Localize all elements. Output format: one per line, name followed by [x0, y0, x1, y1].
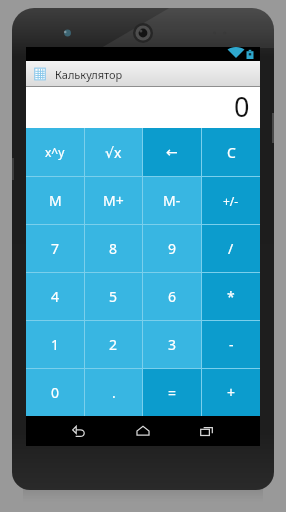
staticText: √x — [105, 143, 122, 162]
staticText: M+ — [103, 191, 124, 210]
staticText: 1 — [51, 335, 60, 354]
staticText: 7 — [51, 239, 60, 258]
staticText: 0 — [51, 383, 60, 402]
button[interactable]: 6 — [143, 273, 201, 320]
button[interactable]: 0 — [26, 369, 84, 416]
button[interactable]: 1 — [26, 321, 84, 368]
button[interactable]: 3 — [143, 321, 201, 368]
staticText: ← — [166, 144, 178, 160]
staticText: x^y — [45, 144, 65, 160]
button[interactable]: Back — [64, 416, 94, 446]
staticText: 6 — [168, 287, 177, 306]
staticText: +/- — [223, 193, 239, 209]
staticText: = — [168, 383, 177, 402]
button[interactable]: ← — [143, 128, 201, 176]
staticText: 2 — [109, 335, 118, 354]
button[interactable]: * — [202, 273, 260, 320]
staticText: Калькулятор — [55, 67, 123, 82]
staticText: 4 — [51, 287, 60, 306]
button[interactable]: - — [202, 321, 260, 368]
button[interactable]: C — [202, 128, 260, 176]
staticText: / — [228, 239, 234, 258]
staticText: + — [227, 383, 236, 402]
button[interactable]: 7 — [26, 225, 84, 272]
button[interactable]: 9 — [143, 225, 201, 272]
button[interactable]: . — [85, 369, 142, 416]
button[interactable]: M+ — [85, 177, 142, 224]
button[interactable]: x^y — [26, 128, 84, 176]
button[interactable]: √x — [85, 128, 142, 176]
staticText: . — [112, 383, 116, 402]
button[interactable]: M — [26, 177, 84, 224]
button[interactable]: Home — [128, 416, 158, 446]
button[interactable]: = — [143, 369, 201, 416]
button[interactable]: +/- — [202, 177, 260, 224]
button[interactable]: 8 — [85, 225, 142, 272]
button[interactable]: Recent apps — [192, 416, 222, 446]
staticText: * — [227, 287, 235, 306]
staticText: M — [49, 191, 62, 210]
staticText: 3 — [168, 335, 177, 354]
staticText: C — [227, 143, 236, 162]
button[interactable]: 2 — [85, 321, 142, 368]
button[interactable]: + — [202, 369, 260, 416]
staticText: 5 — [109, 287, 118, 306]
staticText: 9 — [168, 239, 177, 258]
button[interactable]: 5 — [85, 273, 142, 320]
staticText: M- — [163, 191, 181, 210]
button[interactable]: M- — [143, 177, 201, 224]
staticText: 0 — [234, 88, 250, 125]
staticText: 8 — [109, 239, 118, 258]
button[interactable]: / — [202, 225, 260, 272]
button[interactable]: 4 — [26, 273, 84, 320]
staticText: - — [229, 335, 234, 354]
